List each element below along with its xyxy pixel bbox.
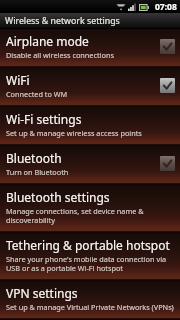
button[interactable]: Tethering & portable hotspot (0, 233, 180, 278)
staticText: VPN settings (6, 285, 78, 301)
staticText: Manage connections, set device name & di… (6, 206, 175, 225)
staticText: Set up & manage Virtual Private Networks… (6, 302, 174, 312)
staticText: 07:08 (155, 1, 177, 13)
button[interactable]: Disabled, unchecked (160, 156, 175, 171)
button[interactable]: Disabled, unchecked (160, 39, 175, 54)
staticText: Share your phone's mobile data connectio… (6, 254, 175, 273)
staticText: Set up & manage wireless access points (6, 128, 142, 138)
button[interactable]: VPN settings (0, 281, 180, 317)
button[interactable]: Enabled, checked (160, 78, 175, 93)
button[interactable]: WiFi (0, 68, 180, 104)
button[interactable]: Wi-Fi settings (0, 107, 180, 143)
staticText: Bluetooth settings (6, 189, 110, 205)
staticText: Tethering & portable hotspot (6, 237, 170, 253)
button[interactable]: Bluetooth settings (0, 185, 180, 230)
staticText: Turn on Bluetooth (6, 167, 69, 177)
staticText: Wi-Fi settings (6, 111, 82, 127)
staticText: Disable all wireless connections (6, 50, 114, 60)
staticText: Connected to WM (6, 89, 68, 99)
button[interactable]: Airplane mode (0, 29, 180, 65)
staticText: WiFi (6, 72, 30, 88)
button[interactable]: Bluetooth (0, 146, 180, 182)
staticText: Bluetooth (6, 150, 62, 166)
staticText: Wireless & network settings (5, 15, 120, 27)
staticText: Airplane mode (6, 33, 89, 49)
